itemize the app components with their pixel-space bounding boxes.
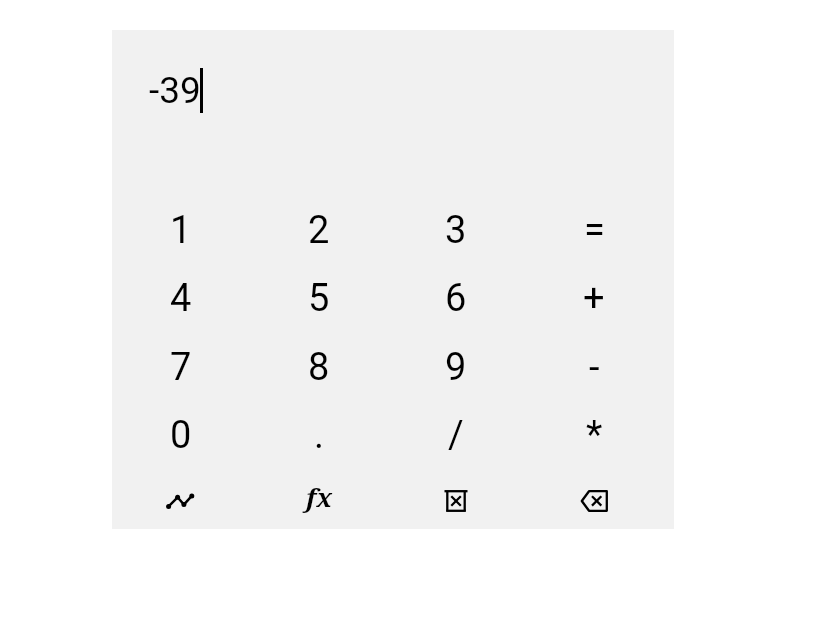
button[interactable]: fx xyxy=(250,467,388,535)
button[interactable]: 9 xyxy=(387,333,525,401)
staticText: 3 xyxy=(445,208,467,253)
button[interactable]: 6 xyxy=(387,264,525,332)
button[interactable] xyxy=(112,467,250,535)
button[interactable]: = xyxy=(525,196,663,264)
staticText: / xyxy=(448,413,464,458)
staticText: . xyxy=(314,413,325,458)
button[interactable]: 5 xyxy=(250,264,388,332)
button[interactable]: 3 xyxy=(387,196,525,264)
staticText: = xyxy=(584,208,605,253)
staticText: - xyxy=(589,345,600,390)
button[interactable]: 4 xyxy=(112,264,250,332)
staticText: -39 xyxy=(149,69,201,112)
button[interactable]: -39 xyxy=(112,50,674,130)
staticText: 2 xyxy=(308,208,330,253)
staticText: 7 xyxy=(170,345,192,390)
staticText: 4 xyxy=(170,276,192,321)
button[interactable]: - xyxy=(525,333,663,401)
staticText: + xyxy=(583,276,605,321)
staticText: 6 xyxy=(445,276,467,321)
button[interactable] xyxy=(387,467,525,535)
button[interactable]: 7 xyxy=(112,333,250,401)
staticText: 9 xyxy=(445,345,467,390)
staticText: 1 xyxy=(170,208,192,253)
staticText: 0 xyxy=(170,413,192,458)
button[interactable]: 8 xyxy=(250,333,388,401)
button[interactable]: + xyxy=(525,264,663,332)
staticText: 5 xyxy=(308,276,330,321)
staticText: * xyxy=(586,413,603,458)
button[interactable]: 0 xyxy=(112,401,250,469)
button[interactable]: 1 xyxy=(112,196,250,264)
staticText: fx xyxy=(306,479,333,514)
button[interactable] xyxy=(525,467,663,535)
button[interactable]: / xyxy=(387,401,525,469)
button[interactable]: 2 xyxy=(250,196,388,264)
button[interactable]: . xyxy=(250,401,388,469)
button[interactable]: * xyxy=(525,401,663,469)
staticText: 8 xyxy=(308,345,330,390)
